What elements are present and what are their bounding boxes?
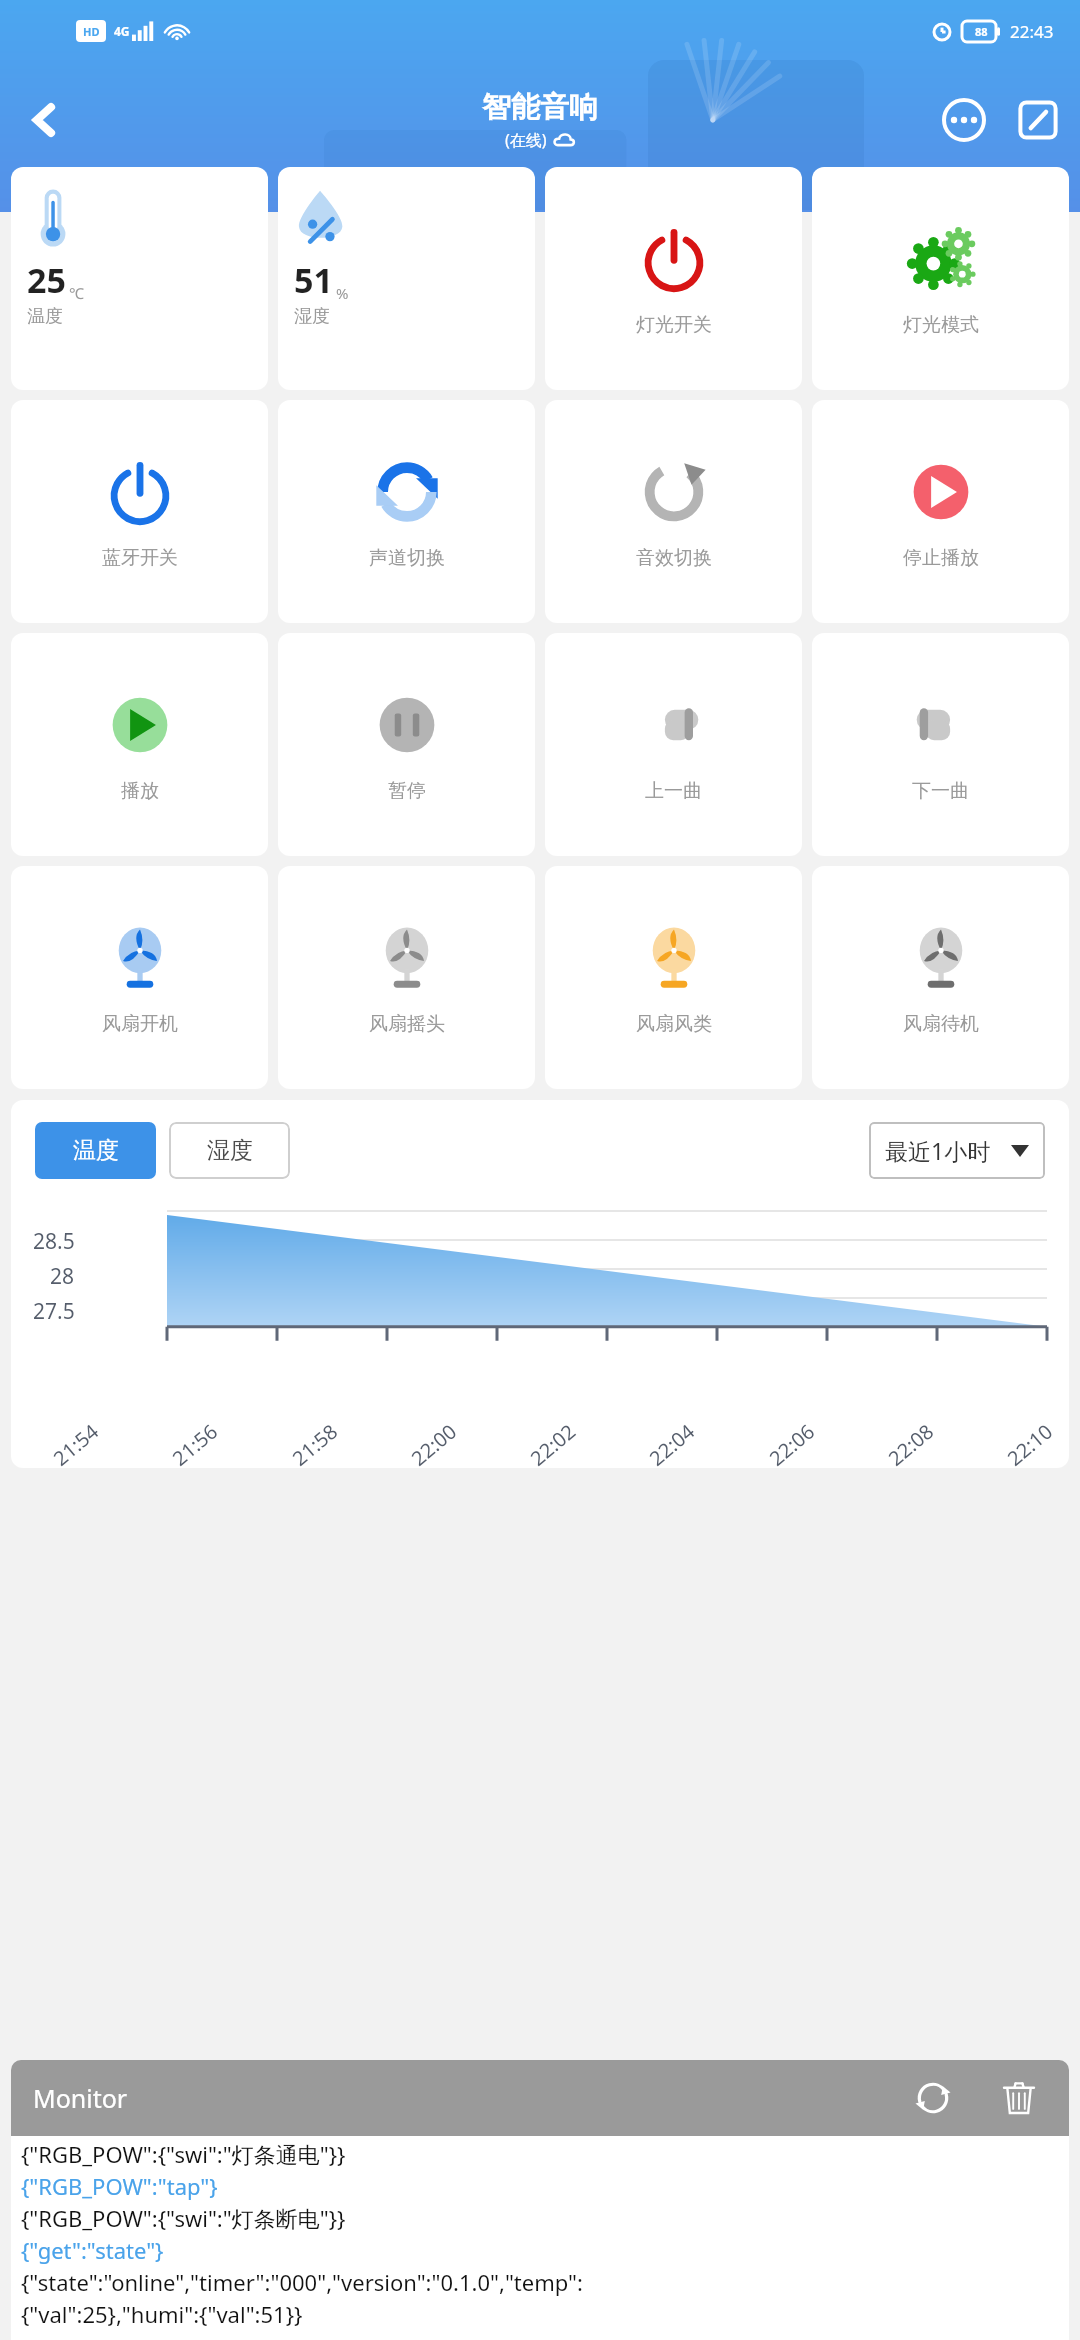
staticText: 智能音响 [482, 89, 598, 126]
staticText: 湿度 [294, 305, 330, 328]
staticText: 蓝牙开关 [102, 546, 178, 570]
staticText: 21:54 [47, 1417, 105, 1468]
staticText: 25 [27, 257, 66, 303]
button[interactable]: 蓝牙开关 [11, 400, 268, 623]
staticText: 停止播放 [903, 546, 979, 570]
staticText: 22:00 [405, 1417, 463, 1468]
staticText: 温度 [73, 1136, 119, 1165]
staticText: {"state":"online","timer":"000","version… [21, 2267, 583, 2297]
button[interactable]: 25 [11, 167, 268, 390]
button[interactable]: 播放 [11, 633, 268, 856]
button[interactable]: 灯光模式 [812, 167, 1069, 390]
button[interactable]: 风扇开机 [11, 866, 268, 1089]
staticText: 温度 [27, 305, 63, 328]
staticText: 27.5 [33, 1297, 75, 1326]
staticText: 灯光模式 [903, 313, 979, 337]
staticText: 风扇摇头 [369, 1012, 445, 1036]
button[interactable]: 暂停 [278, 633, 535, 856]
staticText: 风扇待机 [903, 1012, 979, 1036]
button[interactable]: 湿度 [169, 1122, 290, 1179]
staticText: % [336, 283, 349, 303]
staticText: 88 [975, 24, 988, 39]
staticText: (在线) [505, 129, 547, 151]
staticText: 22:02 [524, 1417, 582, 1468]
staticText: {"get":"state"} [21, 2235, 164, 2265]
button[interactable]: 温度 [35, 1122, 156, 1179]
staticText: 22:43 [1010, 20, 1054, 43]
staticText: 4G [114, 23, 130, 39]
button[interactable]: 声道切换 [278, 400, 535, 623]
button[interactable]: 灯光开关 [545, 167, 802, 390]
staticText: 暂停 [388, 779, 426, 803]
staticText: Monitor [33, 2081, 128, 2115]
staticText: 播放 [121, 779, 159, 803]
staticText: 声道切换 [369, 546, 445, 570]
button[interactable]: 最近1小时 [869, 1122, 1045, 1179]
staticText: 28 [50, 1262, 75, 1291]
staticText: 22:04 [643, 1417, 701, 1468]
button[interactable]: Back [14, 89, 76, 151]
staticText: 22:06 [763, 1417, 821, 1468]
staticText: 音效切换 [636, 546, 712, 570]
button[interactable]: 停止播放 [812, 400, 1069, 623]
staticText: 28.5 [33, 1227, 75, 1256]
staticText: 22:10 [1001, 1417, 1059, 1468]
staticText: 上一曲 [645, 779, 702, 803]
button[interactable]: Refresh [905, 2070, 961, 2126]
staticText: 21:56 [166, 1417, 224, 1468]
staticText: {"RGB_POW":{"swi":"灯条断电"}} [21, 2203, 346, 2233]
staticText: 下一曲 [912, 779, 969, 803]
staticText: {"RGB_POW":{"swi":"灯条通电"}} [21, 2139, 346, 2169]
staticText: 22:08 [882, 1417, 940, 1468]
staticText: ℃ [69, 283, 84, 303]
button[interactable]: 上一曲 [545, 633, 802, 856]
staticText: 风扇风类 [636, 1012, 712, 1036]
button[interactable]: 51 [278, 167, 535, 390]
button[interactable]: 音效切换 [545, 400, 802, 623]
button[interactable]: 下一曲 [812, 633, 1069, 856]
staticText: HD [83, 24, 100, 39]
staticText: 灯光开关 [636, 313, 712, 337]
staticText: 湿度 [207, 1136, 253, 1165]
staticText: 风扇开机 [102, 1012, 178, 1036]
button[interactable]: Clear [991, 2070, 1047, 2126]
button[interactable]: Edit [1012, 94, 1064, 146]
button[interactable]: 风扇风类 [545, 866, 802, 1089]
staticText: {"RGB_POW":"tap"} [21, 2171, 218, 2201]
staticText: 最近1小时 [885, 1135, 991, 1166]
button[interactable]: More options [938, 94, 990, 146]
button[interactable]: 风扇待机 [812, 866, 1069, 1089]
staticText: {"val":25},"humi":{"val":51}} [21, 2299, 303, 2329]
staticText: 21:58 [286, 1417, 344, 1468]
staticText: 51 [294, 257, 333, 303]
button[interactable]: 风扇摇头 [278, 866, 535, 1089]
